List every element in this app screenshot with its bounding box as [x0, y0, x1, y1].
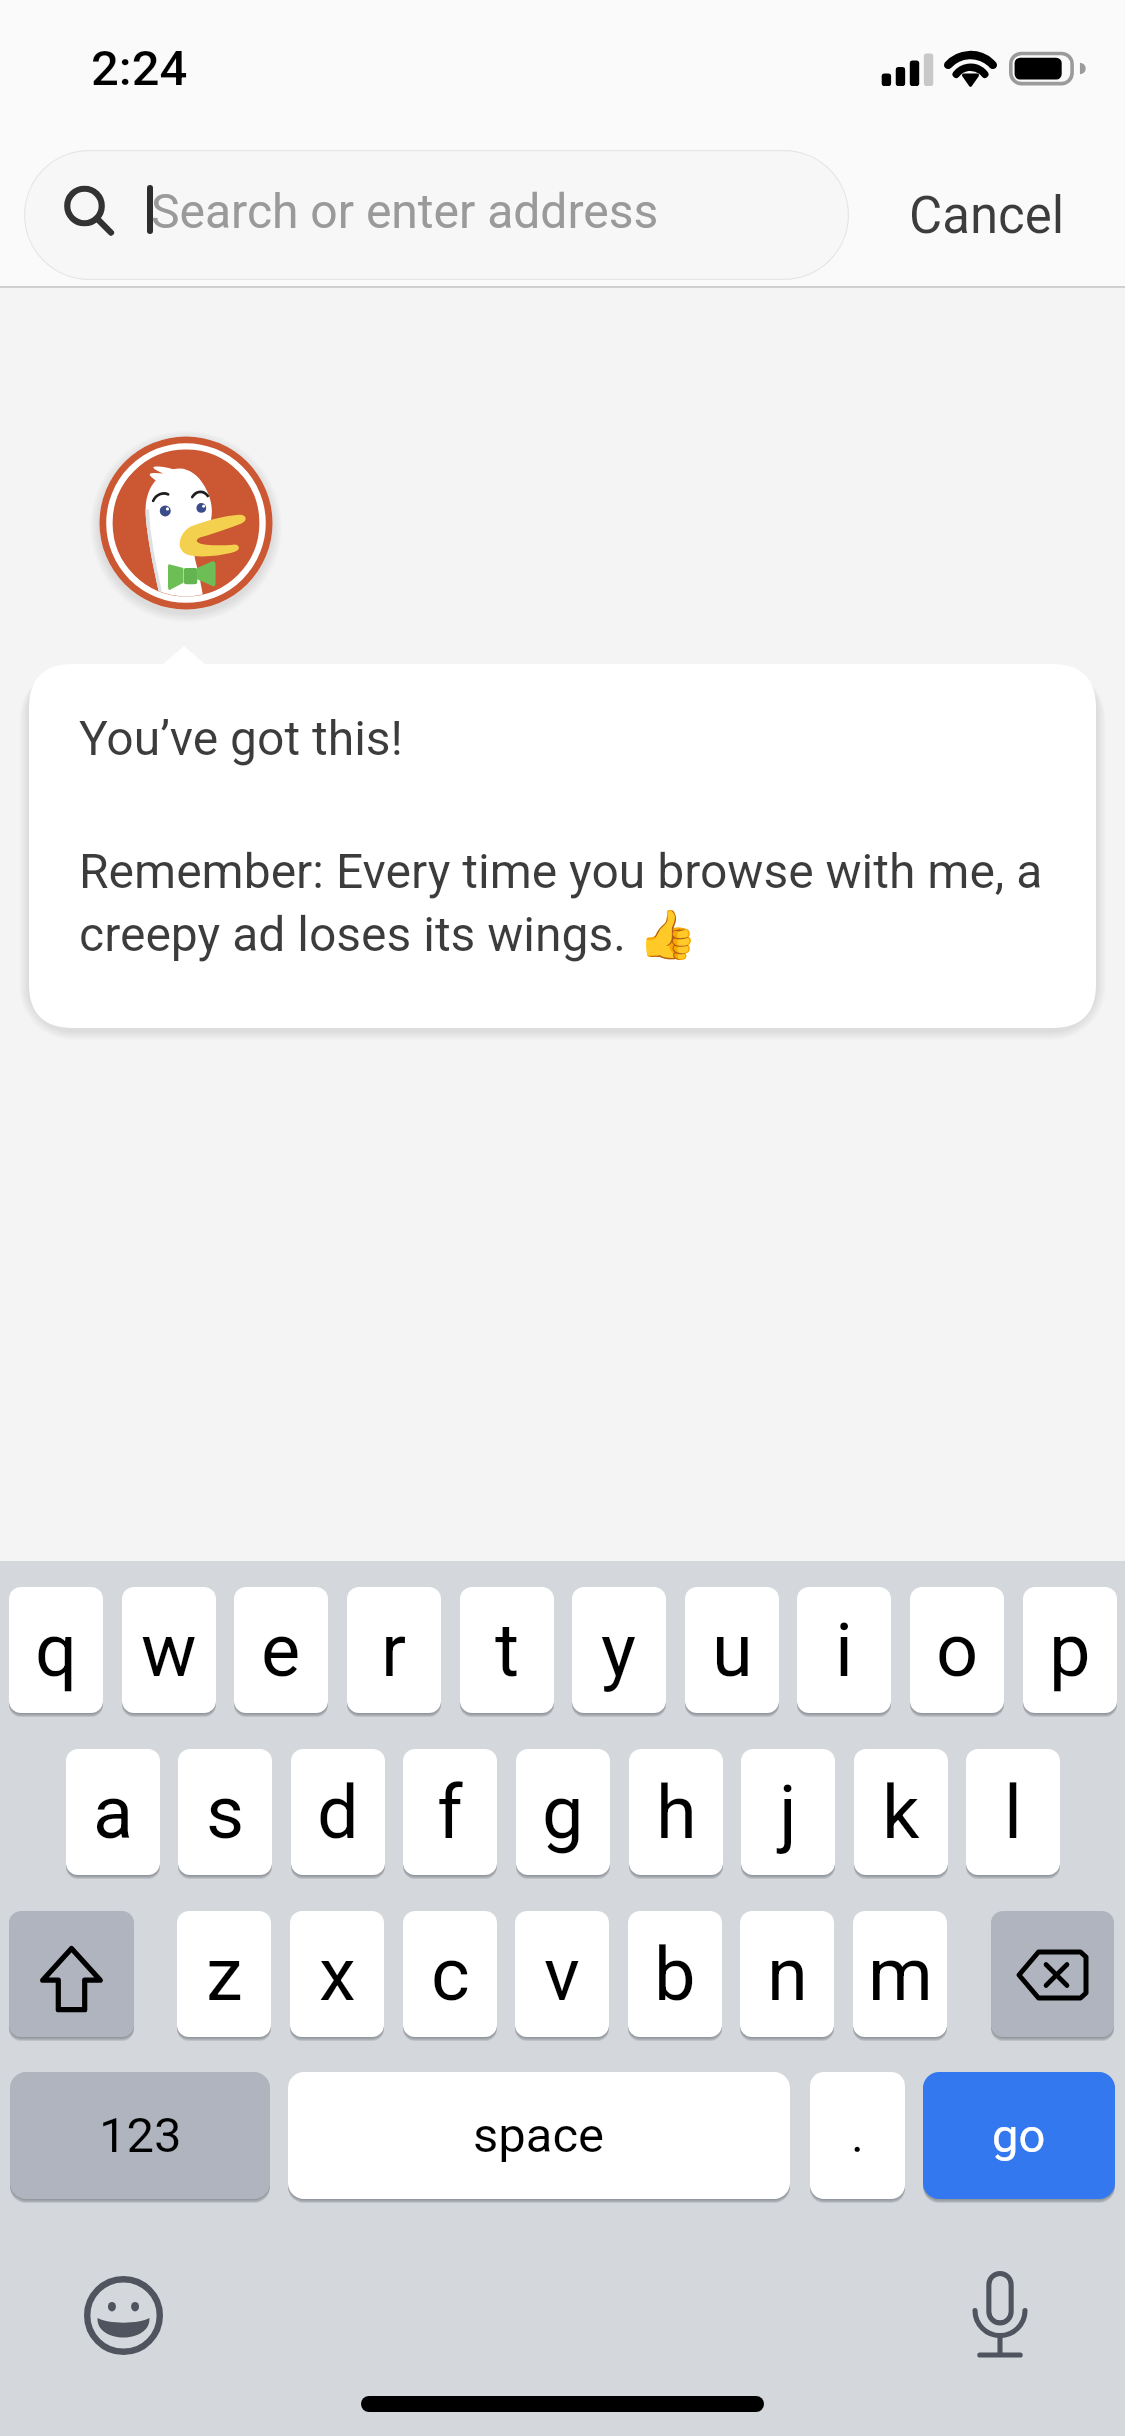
button[interactable]: 123 — [10, 2072, 270, 2203]
button[interactable]: go — [923, 2072, 1115, 2203]
staticText: Cancel — [909, 186, 1065, 246]
staticText: . — [851, 2107, 864, 2164]
staticText: Search or enter address — [151, 183, 659, 239]
staticText: n — [767, 1931, 808, 2018]
button[interactable]: d — [291, 1749, 385, 1879]
button[interactable]: Search or enter address — [24, 150, 849, 280]
staticText: g — [542, 1769, 584, 1856]
button[interactable]: Emoji — [84, 2276, 163, 2355]
button[interactable]: w — [122, 1587, 216, 1717]
staticText: Remember: Every time you browse with me,… — [79, 843, 1051, 963]
button[interactable]: k — [854, 1749, 948, 1879]
button[interactable]: Backspace — [991, 1911, 1114, 2041]
button[interactable]: z — [177, 1911, 271, 2041]
button[interactable]: u — [685, 1587, 779, 1717]
staticText: w — [141, 1607, 197, 1694]
button[interactable]: g — [516, 1749, 610, 1879]
staticText: b — [654, 1931, 696, 2018]
button[interactable]: f — [403, 1749, 497, 1879]
button[interactable]: e — [234, 1587, 328, 1717]
staticText: You’ve got this! — [79, 710, 403, 766]
staticText: t — [495, 1607, 520, 1694]
button[interactable]: l — [966, 1749, 1060, 1879]
button[interactable]: q — [9, 1587, 103, 1717]
staticText: v — [544, 1931, 580, 2018]
button[interactable]: space — [288, 2072, 790, 2203]
staticText: s — [206, 1769, 245, 1856]
staticText: e — [261, 1607, 301, 1694]
staticText: f — [437, 1769, 463, 1856]
button[interactable]: a — [66, 1749, 160, 1879]
button[interactable]: . — [810, 2072, 905, 2203]
staticText: d — [317, 1769, 359, 1856]
button[interactable]: y — [572, 1587, 666, 1717]
staticText: 2:24 — [91, 40, 188, 97]
staticText: z — [206, 1931, 243, 2018]
button[interactable]: j — [741, 1749, 835, 1879]
button[interactable]: x — [290, 1911, 384, 2041]
staticText: m — [868, 1931, 933, 2018]
button[interactable]: p — [1023, 1587, 1117, 1717]
staticText: l — [1004, 1769, 1022, 1856]
staticText: i — [835, 1607, 853, 1694]
staticText: go — [992, 2108, 1046, 2163]
button[interactable]: Shift — [9, 1911, 134, 2041]
staticText: h — [656, 1769, 697, 1856]
button[interactable]: v — [515, 1911, 609, 2041]
staticText: j — [779, 1769, 797, 1856]
staticText: y — [601, 1607, 637, 1694]
button[interactable]: o — [910, 1587, 1004, 1717]
staticText: u — [712, 1607, 753, 1694]
button[interactable]: b — [628, 1911, 722, 2041]
button[interactable]: c — [403, 1911, 497, 2041]
button[interactable]: m — [853, 1911, 947, 2041]
button[interactable]: Cancel — [887, 161, 1087, 271]
button[interactable]: n — [740, 1911, 834, 2041]
button[interactable]: s — [178, 1749, 272, 1879]
button[interactable]: r — [347, 1587, 441, 1717]
staticText: x — [319, 1931, 356, 2018]
staticText: p — [1049, 1607, 1091, 1694]
button[interactable]: h — [629, 1749, 723, 1879]
staticText: 123 — [99, 2107, 182, 2164]
staticText: r — [381, 1607, 407, 1694]
staticText: a — [93, 1769, 134, 1856]
staticText: o — [936, 1607, 979, 1694]
staticText: k — [882, 1769, 920, 1856]
staticText: space — [473, 2107, 605, 2164]
staticText: c — [431, 1931, 470, 2018]
staticText: q — [35, 1607, 78, 1694]
button[interactable]: t — [460, 1587, 554, 1717]
button[interactable]: i — [797, 1587, 891, 1717]
button[interactable]: Dictation — [972, 2271, 1028, 2359]
